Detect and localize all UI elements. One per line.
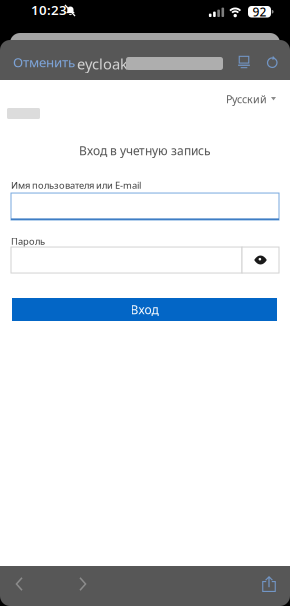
staticText: Русский (226, 92, 267, 106)
button[interactable]: Поделиться (250, 564, 288, 604)
button[interactable]: Показать пароль (242, 247, 279, 273)
staticText: Имя пользователя или E-mail (11, 179, 141, 191)
staticText: 92 (252, 4, 266, 20)
button[interactable]: Вход (12, 298, 277, 321)
staticText: Вход в учетную запись (79, 142, 211, 158)
button[interactable]: Вперёд (64, 564, 102, 604)
staticText: Вход (130, 301, 158, 317)
button[interactable]: Назад (0, 564, 38, 604)
staticText: Отменить (13, 53, 75, 71)
staticText: eycloak. (77, 54, 132, 73)
staticText: 10:23 (31, 1, 67, 19)
button[interactable]: Русский (220, 92, 276, 106)
button[interactable]: Перезагрузить (257, 42, 287, 82)
button[interactable]: Вид страницы (229, 42, 259, 82)
button[interactable]: Отменить (9, 42, 79, 82)
staticText: Пароль (11, 235, 45, 247)
